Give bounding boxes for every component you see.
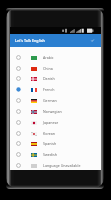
staticText: China [43, 66, 53, 71]
staticText: French [43, 87, 55, 92]
button[interactable]: Korean [10, 128, 101, 139]
staticText: Language Unavailable [43, 163, 81, 168]
staticText: Japanese [43, 120, 59, 125]
staticText: Korean [43, 131, 56, 136]
button[interactable]: Spanish [10, 138, 101, 149]
staticText: Swedish [43, 152, 57, 157]
button[interactable]: Language Unavailable [10, 160, 101, 171]
button[interactable]: Done [89, 37, 96, 44]
button[interactable]: German [10, 95, 101, 106]
button[interactable]: Arabic [10, 52, 101, 63]
button[interactable]: Japanese [10, 117, 101, 128]
button[interactable]: Danish [10, 73, 101, 84]
staticText: German [43, 98, 57, 103]
button[interactable]: French [10, 84, 101, 95]
staticText: Spanish [43, 141, 57, 146]
staticText: Let's Talk English [15, 38, 45, 43]
staticText: Danish [43, 76, 55, 81]
staticText: Norwegian [43, 109, 62, 114]
staticText: Arabic [43, 55, 54, 60]
button[interactable]: Swedish [10, 149, 101, 160]
button[interactable]: China [10, 63, 101, 74]
button[interactable]: Norwegian [10, 106, 101, 117]
button[interactable]: Let's Talk English [10, 34, 101, 47]
